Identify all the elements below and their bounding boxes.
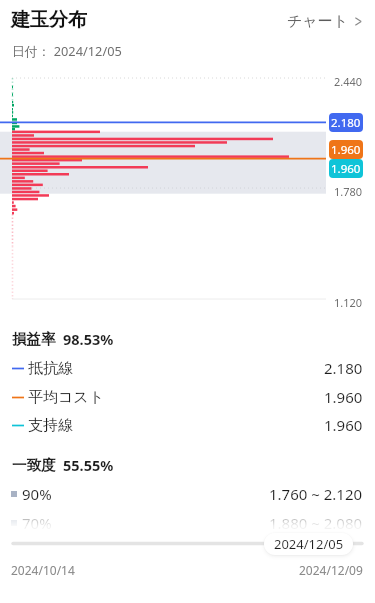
staticText: 建玉分布 xyxy=(11,8,87,32)
button[interactable]: Date slider thumb xyxy=(264,533,353,555)
staticText: 2.440 xyxy=(334,74,363,89)
staticText: チャート xyxy=(287,12,349,31)
button[interactable]: 90% xyxy=(0,480,375,508)
staticText: 日付： 2024/12/05 xyxy=(12,42,122,59)
staticText: 90% xyxy=(22,484,52,504)
staticText: 55.55% xyxy=(63,455,114,475)
staticText: 1.960 xyxy=(331,161,361,177)
staticText: 70% xyxy=(22,513,52,533)
staticText: 1.880 ~ 2.080 xyxy=(269,513,363,533)
button[interactable]: 支持線 xyxy=(0,411,375,439)
staticText: 損益率 xyxy=(12,330,56,348)
staticText: 1.960 xyxy=(324,415,363,435)
button[interactable]: 平均コスト xyxy=(0,383,375,411)
staticText: 平均コスト xyxy=(28,388,105,407)
staticText: 1.960 xyxy=(331,142,361,158)
staticText: 2024/12/09 xyxy=(299,562,363,578)
staticText: 1.120 xyxy=(334,295,363,307)
staticText: 2.180 xyxy=(324,358,363,378)
button[interactable]: 70% xyxy=(0,509,375,537)
button[interactable]: チャート xyxy=(283,10,367,33)
staticText: 1.780 xyxy=(334,184,363,199)
staticText: 1.960 xyxy=(324,387,363,407)
staticText: 98.53% xyxy=(63,329,114,349)
button[interactable]: 抵抗線 xyxy=(0,354,375,382)
staticText: 支持線 xyxy=(28,416,73,435)
staticText: 2.180 xyxy=(331,115,361,131)
staticText: 2024/10/14 xyxy=(11,562,75,578)
staticText: 2024/12/05 xyxy=(274,535,344,553)
staticText: 1.760 ~ 2.120 xyxy=(269,484,363,504)
staticText: 抵抗線 xyxy=(28,359,73,378)
staticText: 一致度 xyxy=(12,456,56,474)
